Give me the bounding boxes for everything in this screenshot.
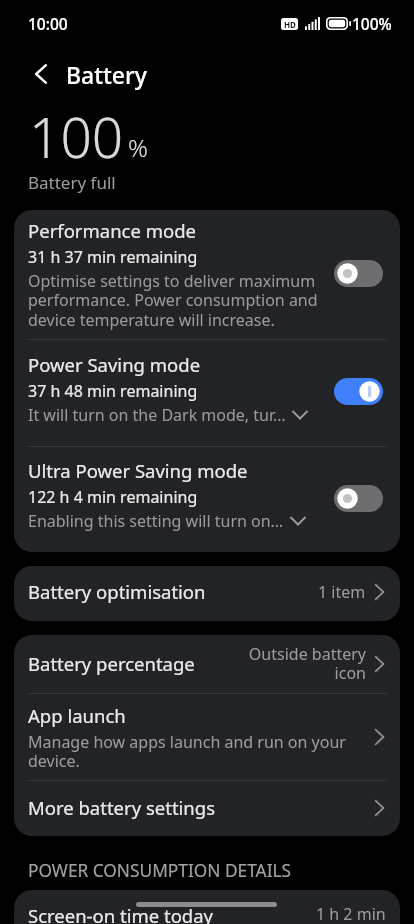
button[interactable]: Performance mode <box>14 210 400 339</box>
button[interactable]: Switch on <box>334 378 383 405</box>
button[interactable]: Screen-on time today <box>14 890 400 924</box>
staticText: Enabling this setting will turn on… <box>28 510 284 532</box>
staticText: HD <box>284 19 296 30</box>
staticText: It will turn on the Dark mode, tur… <box>28 404 286 426</box>
button[interactable]: Switch off <box>334 260 383 287</box>
staticText: 100 <box>29 99 124 174</box>
staticText: App launch <box>28 703 126 728</box>
staticText: Battery full <box>28 171 116 194</box>
staticText: Optimise settings to deliver maximum per… <box>28 270 328 331</box>
staticText: 1 item <box>318 581 366 603</box>
staticText: Screen-on time today <box>28 903 316 924</box>
staticText: Outside battery icon <box>242 643 366 684</box>
button[interactable]: Battery optimisation <box>14 566 400 621</box>
staticText: Battery <box>66 59 147 90</box>
staticText: 122 h 4 min remaining <box>28 486 198 508</box>
staticText: Manage how apps launch and run on your d… <box>28 731 365 771</box>
staticText: 100% <box>352 13 392 34</box>
staticText: 37 h 48 min remaining <box>28 380 198 402</box>
staticText: Ultra Power Saving mode <box>28 458 248 483</box>
staticText: % <box>128 131 148 164</box>
staticText: Power Saving mode <box>28 352 201 377</box>
button[interactable]: Ultra Power Saving mode <box>14 447 400 552</box>
staticText: 31 h 37 min remaining <box>28 246 198 268</box>
staticText: Battery percentage <box>28 651 242 676</box>
staticText: Performance mode <box>28 218 196 243</box>
staticText: 1 h 2 min <box>316 903 386 924</box>
button[interactable]: App launch <box>14 694 400 780</box>
button[interactable]: Switch off <box>334 485 383 512</box>
button[interactable]: Battery percentage <box>14 635 400 693</box>
staticText: POWER CONSUMPTION DETAILS <box>28 859 292 883</box>
staticText: More battery settings <box>28 795 375 820</box>
button[interactable]: Back <box>24 57 58 91</box>
button[interactable]: More battery settings <box>14 781 400 836</box>
button[interactable]: Power Saving mode <box>14 340 400 446</box>
staticText: Battery optimisation <box>28 579 318 604</box>
staticText: 10:00 <box>28 13 68 34</box>
